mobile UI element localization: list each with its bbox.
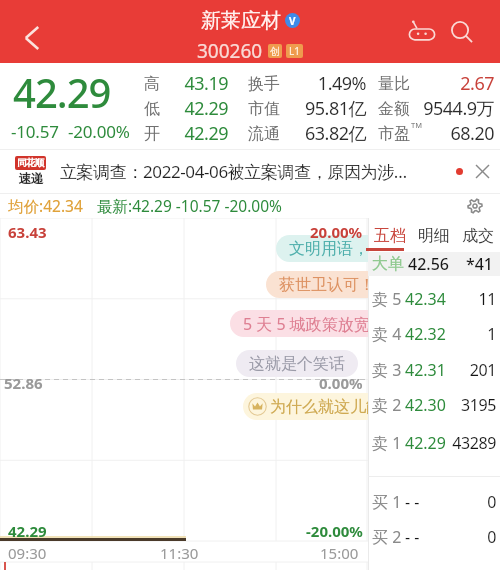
staticText: 大单 bbox=[372, 254, 404, 274]
button[interactable]: Close bbox=[472, 161, 492, 181]
staticText: 42.29 bbox=[8, 521, 47, 541]
staticText: 低 bbox=[144, 99, 160, 119]
staticText: 买 2 bbox=[372, 526, 402, 548]
staticText: 0.00% bbox=[319, 373, 363, 393]
staticText: 五档 bbox=[374, 226, 406, 246]
staticText: 42.34 bbox=[405, 288, 446, 310]
staticText: 成交 bbox=[462, 226, 494, 246]
staticText: 卖 2 bbox=[372, 394, 402, 416]
staticText: V bbox=[289, 14, 296, 28]
staticText: 0 bbox=[420, 491, 496, 513]
staticText: 09:30 bbox=[8, 543, 47, 563]
staticText: 95.81亿 bbox=[280, 96, 366, 121]
staticText: 42.31 bbox=[405, 359, 446, 381]
staticText: 开 bbox=[144, 124, 160, 144]
staticText: 均价:42.34 bbox=[8, 195, 83, 216]
staticText: 63.82亿 bbox=[280, 121, 366, 146]
staticText: 市盈 bbox=[378, 124, 410, 144]
staticText: 金额 bbox=[378, 99, 410, 119]
staticText: 创 bbox=[270, 45, 280, 58]
staticText: 立案调查：2022-04-06被立案调查，原因为涉… bbox=[60, 160, 452, 183]
staticText: 为什么就这儿能 bbox=[270, 397, 368, 417]
staticText: 42.29 bbox=[160, 121, 228, 146]
button[interactable]: 五档 bbox=[368, 221, 412, 251]
staticText: 1 bbox=[446, 323, 496, 345]
staticText: 市值 bbox=[248, 99, 280, 119]
button[interactable]: 卖 1 bbox=[372, 432, 496, 454]
staticText: 201 bbox=[446, 359, 496, 381]
staticText: 获世卫认可！ bbox=[279, 275, 368, 295]
staticText: 卖 1 bbox=[372, 432, 402, 454]
staticText: 43.19 bbox=[160, 71, 228, 96]
button[interactable]: 成交 bbox=[456, 221, 500, 251]
staticText: 42.32 bbox=[405, 323, 446, 345]
staticText: 文明用语，理 bbox=[289, 239, 368, 259]
staticText: 流通 bbox=[248, 124, 280, 144]
button[interactable]: 明细 bbox=[412, 221, 456, 251]
staticText: 卖 3 bbox=[372, 359, 402, 381]
button[interactable]: 买 2 bbox=[372, 526, 496, 548]
staticText: 42.56 bbox=[408, 253, 449, 275]
button[interactable]: 买 1 bbox=[372, 491, 496, 513]
staticText: 量比 bbox=[378, 74, 410, 94]
staticText: 11:30 bbox=[160, 543, 199, 563]
staticText: 这就是个笑话 bbox=[249, 354, 345, 374]
button[interactable]: AI assistant bbox=[402, 12, 442, 52]
staticText: 300260 bbox=[197, 38, 263, 64]
staticText: 11 bbox=[446, 288, 496, 310]
staticText: 42.29 bbox=[160, 96, 228, 121]
staticText: 68.20 bbox=[410, 121, 494, 146]
staticText: 52.86 bbox=[4, 373, 43, 393]
staticText: 买 1 bbox=[372, 491, 402, 513]
button[interactable]: 卖 3 bbox=[372, 359, 496, 381]
staticText: 43289 bbox=[446, 432, 496, 454]
staticText: 卖 4 bbox=[372, 323, 402, 345]
staticText: 0 bbox=[420, 526, 496, 548]
staticText: 高 bbox=[144, 74, 160, 94]
staticText: 最新:42.29 -10.57 -20.00% bbox=[97, 195, 282, 216]
staticText: 卖 5 bbox=[372, 288, 402, 310]
staticText: 3195 bbox=[446, 394, 496, 416]
button[interactable]: 同花顺 bbox=[15, 149, 492, 193]
staticText: 速递 bbox=[19, 171, 43, 187]
staticText: 20.00% bbox=[310, 222, 363, 242]
staticText: - - bbox=[405, 526, 420, 548]
staticText: 63.43 bbox=[8, 222, 47, 242]
staticText: -10.57 bbox=[11, 120, 59, 143]
staticText: 42.29 bbox=[405, 432, 446, 454]
button[interactable]: Search bbox=[442, 12, 482, 52]
staticText: *41 bbox=[449, 253, 493, 275]
button[interactable]: 卖 2 bbox=[372, 394, 496, 416]
staticText: - - bbox=[405, 491, 420, 513]
staticText: 9544.9万 bbox=[410, 96, 494, 121]
staticText: TM bbox=[411, 120, 422, 130]
button[interactable]: Settings bbox=[464, 195, 486, 217]
button[interactable]: Back bbox=[10, 16, 54, 60]
button[interactable]: 卖 4 bbox=[372, 323, 496, 345]
staticText: 2.67 bbox=[410, 71, 494, 96]
staticText: 42.29 bbox=[13, 65, 111, 119]
staticText: 明细 bbox=[418, 226, 450, 246]
staticText: 42.30 bbox=[405, 394, 446, 416]
staticText: 换手 bbox=[248, 74, 280, 94]
staticText: 1.49% bbox=[280, 71, 366, 96]
staticText: 同花顺 bbox=[17, 157, 44, 169]
staticText: -20.00% bbox=[306, 521, 363, 541]
staticText: 15:00 bbox=[320, 543, 359, 563]
staticText: -20.00% bbox=[68, 120, 130, 143]
staticText: 新莱应材 bbox=[201, 8, 281, 33]
staticText: 5 天 5 城政策放宽， bbox=[243, 313, 368, 335]
button[interactable]: 卖 5 bbox=[372, 288, 496, 310]
staticText: L1 bbox=[289, 44, 300, 58]
